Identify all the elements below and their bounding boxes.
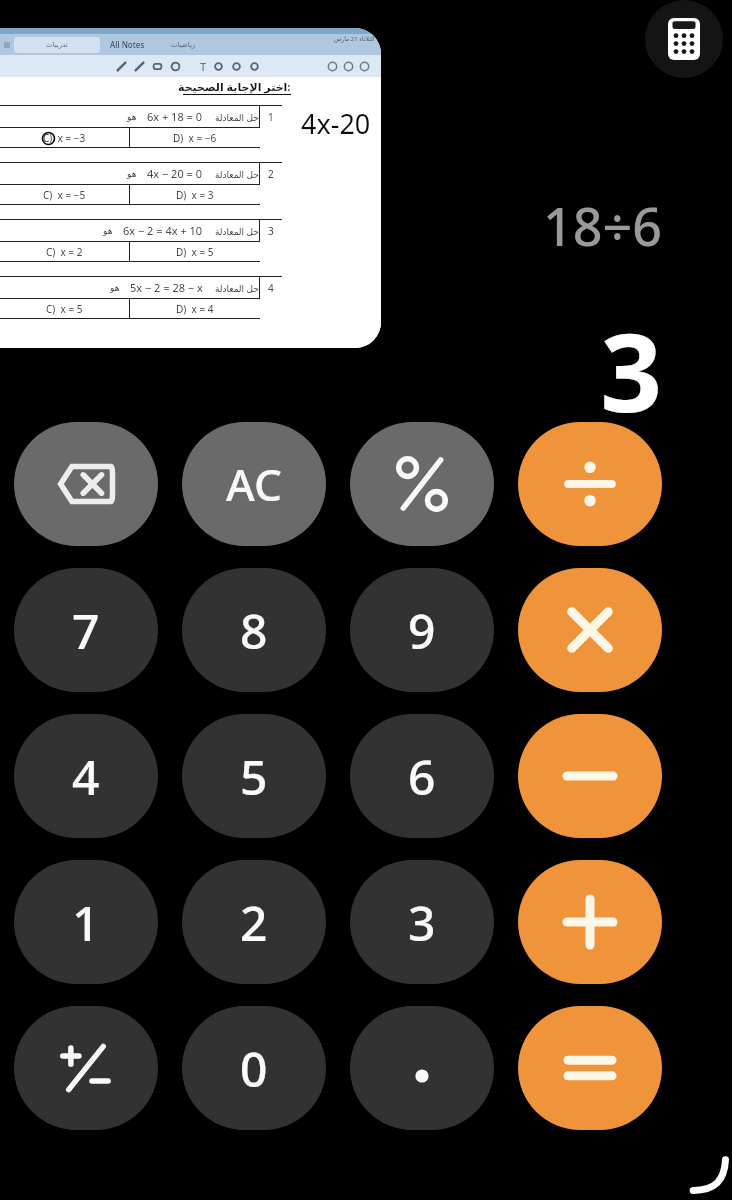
button[interactable]: Minus: [518, 714, 662, 838]
staticText: 7: [72, 598, 100, 663]
staticText: C) x = 2: [46, 245, 83, 259]
staticText: حل المعادلة: [215, 111, 259, 123]
button[interactable]: Decimal point: [350, 1006, 494, 1130]
staticText: رياضيات: [171, 41, 196, 49]
staticText: 0: [240, 1036, 268, 1101]
staticText: 8: [240, 598, 268, 663]
button[interactable]: 7: [14, 568, 158, 692]
staticText: 6x + 18 = 0: [147, 109, 203, 124]
staticText: 3: [600, 297, 662, 444]
button[interactable]: 3: [350, 860, 494, 984]
staticText: الثلاثاء 21 مارس: [334, 35, 375, 43]
other: Percent: [396, 456, 448, 512]
staticText: T: [200, 59, 207, 74]
staticText: حل المعادلة: [215, 282, 259, 294]
staticText: هو: [127, 169, 137, 179]
button[interactable]: Multiply: [518, 568, 662, 692]
staticText: هو: [103, 226, 113, 236]
button[interactable]: Calculator floating button: [645, 0, 723, 78]
staticText: 3: [408, 890, 436, 955]
staticText: 18÷6: [543, 190, 662, 261]
button[interactable]: 9: [350, 568, 494, 692]
staticText: All Notes: [110, 39, 145, 50]
staticText: 6x − 2 = 4x + 10: [123, 223, 203, 238]
staticText: هو: [127, 112, 137, 122]
staticText: 1: [268, 110, 274, 124]
staticText: اختر الإجابة الصحيحة:: [178, 79, 291, 94]
staticText: 9: [408, 598, 436, 663]
button[interactable]: Divide: [518, 422, 662, 546]
staticText: 4: [268, 281, 274, 295]
staticText: 3: [268, 224, 274, 238]
staticText: AC: [226, 454, 282, 514]
staticText: C) x = 5: [46, 302, 83, 316]
staticText: 2: [240, 890, 268, 955]
button[interactable]: 6: [350, 714, 494, 838]
staticText: 2: [268, 167, 274, 181]
other: Plus minus: [59, 1041, 113, 1095]
staticText: D) x = 5: [176, 245, 214, 259]
button[interactable]: 5: [182, 714, 326, 838]
button[interactable]: AC: [182, 422, 326, 546]
button[interactable]: 0: [182, 1006, 326, 1130]
button[interactable]: Plus: [518, 860, 662, 984]
staticText: D) x = 4: [176, 302, 214, 316]
staticText: حل المعادلة: [215, 168, 259, 180]
staticText: 4x − 20 = 0: [147, 166, 203, 181]
staticText: 4: [72, 744, 100, 809]
staticText: تدريبات: [46, 41, 68, 49]
staticText: C) x = −3: [43, 131, 86, 145]
button[interactable]: Equals: [518, 1006, 662, 1130]
staticText: 5x − 2 = 28 − x: [130, 280, 203, 295]
staticText: 4x-20: [301, 105, 371, 142]
button[interactable]: Percent: [350, 422, 494, 546]
staticText: هو: [110, 283, 120, 293]
button[interactable]: 8: [182, 568, 326, 692]
other: Decimal point: [411, 1065, 433, 1087]
staticText: 1: [72, 890, 100, 955]
button[interactable]: Backspace: [14, 422, 158, 546]
staticText: حل المعادلة: [215, 225, 259, 237]
button[interactable]: 2: [182, 860, 326, 984]
staticText: D) x = −6: [173, 131, 217, 145]
button[interactable]: Plus minus: [14, 1006, 158, 1130]
button[interactable]: 1: [14, 860, 158, 984]
button[interactable]: 4: [14, 714, 158, 838]
staticText: 6: [408, 744, 436, 809]
staticText: C) x = −5: [43, 188, 86, 202]
other: Backspace: [54, 461, 118, 507]
staticText: D) x = 3: [176, 188, 214, 202]
staticText: 5: [240, 744, 268, 809]
